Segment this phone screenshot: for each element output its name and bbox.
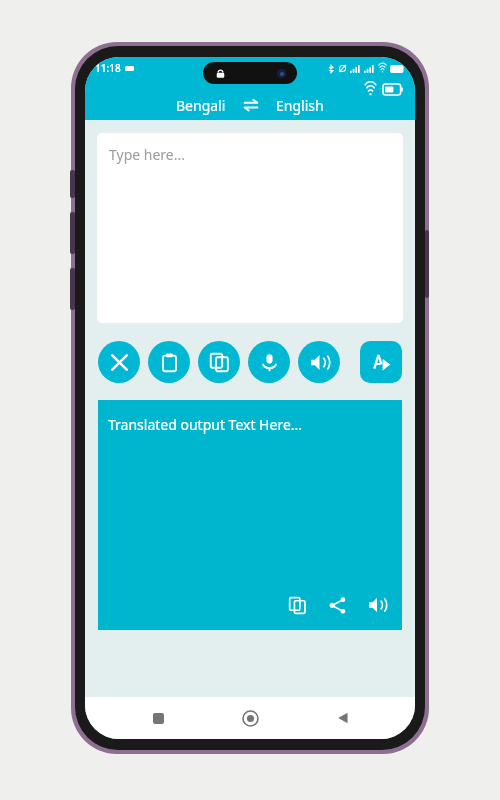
staticText: 11:18 [95, 61, 121, 75]
button[interactable]: Back [323, 698, 363, 738]
button[interactable]: Listen [298, 341, 340, 383]
staticText: English [276, 96, 324, 115]
button[interactable]: Copy [198, 341, 240, 383]
button[interactable]: English [270, 94, 330, 117]
button[interactable]: Paste [148, 341, 190, 383]
button[interactable]: Type here... [97, 133, 403, 323]
button[interactable]: Share translation [322, 590, 352, 620]
button[interactable]: Speak [248, 341, 290, 383]
staticText: Type here... [109, 145, 185, 164]
button[interactable]: Translate [360, 341, 402, 383]
button[interactable]: Home [230, 698, 270, 738]
button[interactable]: Clear [98, 341, 140, 383]
staticText: Bengali [176, 96, 226, 115]
button[interactable]: Translated output Text Here... [98, 400, 402, 630]
staticText: Translated output Text Here... [108, 415, 303, 434]
button[interactable]: Copy translation [282, 590, 312, 620]
button[interactable]: Recents [138, 698, 178, 738]
button[interactable]: Listen to translation [362, 590, 392, 620]
button[interactable]: Swap languages [240, 94, 262, 116]
button[interactable]: Bengali [170, 94, 232, 117]
